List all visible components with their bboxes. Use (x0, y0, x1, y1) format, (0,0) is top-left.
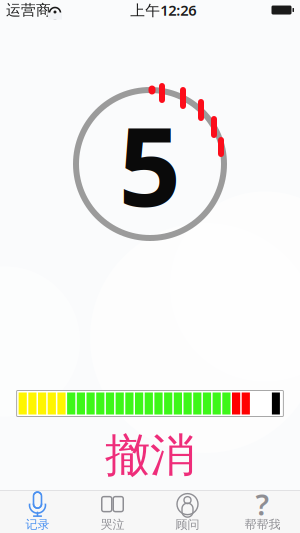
staticText: 顾问 (175, 517, 199, 532)
button[interactable]: 记录 (0, 491, 75, 533)
staticText: ? (255, 485, 269, 524)
staticText: 记录 (25, 517, 49, 532)
button[interactable]: 撤消 (0, 432, 300, 478)
staticText: 运营商 (6, 1, 51, 19)
button[interactable]: 哭泣 (75, 491, 150, 533)
staticText: 上午12:26 (130, 0, 196, 20)
staticText: 撤消 (105, 428, 195, 483)
staticText: 5 (118, 91, 181, 237)
staticText: 帮帮我 (244, 517, 280, 532)
button[interactable]: ? (225, 491, 300, 533)
button[interactable]: 顾问 (150, 491, 225, 533)
staticText: 哭泣 (100, 517, 124, 532)
